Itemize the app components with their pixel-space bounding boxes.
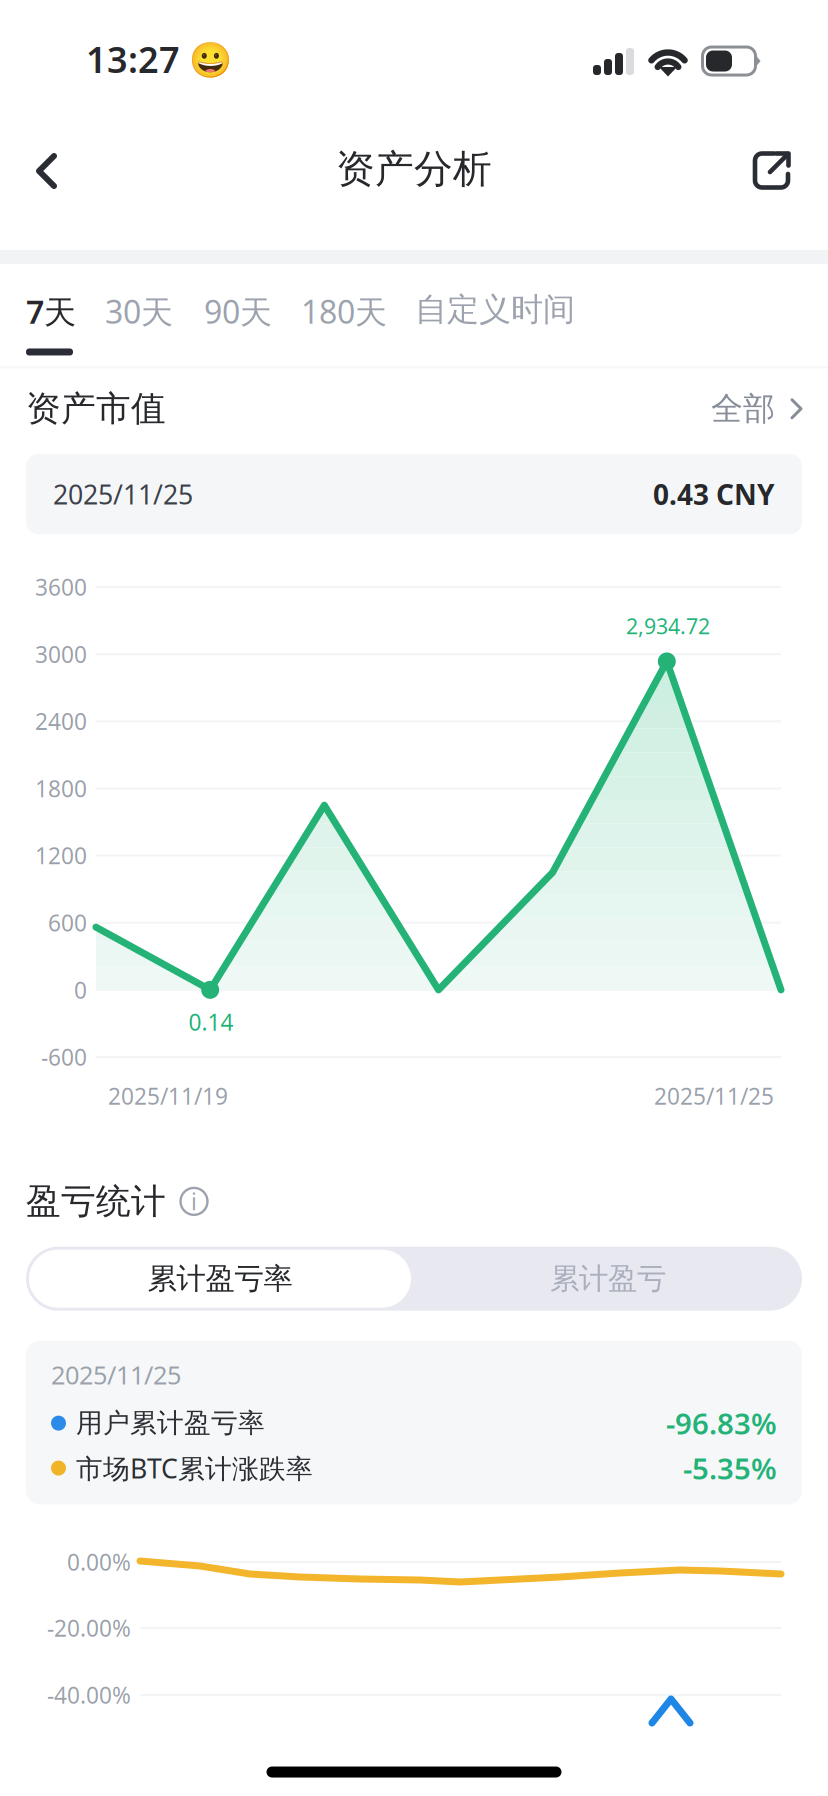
button[interactable]: 全部 bbox=[711, 389, 802, 428]
staticText: 资产市值 bbox=[26, 387, 166, 430]
staticText: 0 bbox=[74, 975, 87, 1005]
staticText: 累计盈亏 bbox=[550, 1261, 666, 1297]
staticText: 7天 bbox=[26, 290, 76, 332]
button[interactable]: 180天 bbox=[301, 290, 387, 332]
staticText: 2400 bbox=[35, 706, 87, 736]
staticText: 3600 bbox=[35, 572, 87, 602]
staticText: 累计盈亏率 bbox=[147, 1261, 292, 1297]
staticText: 0.14 bbox=[188, 1007, 233, 1037]
staticText: 1800 bbox=[35, 773, 87, 803]
staticText: i bbox=[191, 1186, 197, 1216]
button[interactable]: 90天 bbox=[204, 290, 272, 332]
staticText: 2025/11/19 bbox=[108, 1081, 228, 1111]
staticText: -96.83% bbox=[666, 1404, 777, 1443]
staticText: 13:27 bbox=[86, 35, 180, 83]
button[interactable]: 30天 bbox=[105, 290, 173, 332]
button[interactable]: 累计盈亏率 bbox=[26, 1247, 414, 1311]
button[interactable]: 分享 bbox=[721, 125, 825, 218]
staticText: 😀 bbox=[180, 36, 232, 82]
staticText: 用户累计盈亏率 bbox=[76, 1407, 265, 1440]
staticText: 盈亏统计 bbox=[26, 1180, 166, 1223]
button[interactable]: 自定义时间 bbox=[415, 290, 575, 329]
staticText: 0.00% bbox=[67, 1547, 131, 1577]
staticText: 全部 bbox=[711, 389, 775, 428]
staticText: 3000 bbox=[35, 639, 87, 669]
staticText: -40.00% bbox=[47, 1680, 131, 1710]
staticText: -20.00% bbox=[47, 1613, 131, 1643]
staticText: 2025/11/25 bbox=[51, 1358, 181, 1391]
button[interactable]: 说明 bbox=[179, 1186, 209, 1216]
staticText: 2025/11/25 bbox=[654, 1081, 774, 1111]
staticText: 市场BTC累计涨跌率 bbox=[76, 1450, 313, 1486]
staticText: 30天 bbox=[105, 290, 173, 332]
staticText: 180天 bbox=[301, 290, 387, 332]
staticText: 自定义时间 bbox=[415, 290, 575, 329]
staticText: 资产分析 bbox=[336, 145, 492, 193]
staticText: 90天 bbox=[204, 290, 272, 332]
staticText: 2,934.72 bbox=[626, 612, 710, 640]
staticText: 1200 bbox=[35, 840, 87, 871]
button[interactable]: 7天 bbox=[26, 290, 76, 355]
staticText: -600 bbox=[41, 1042, 87, 1072]
button[interactable]: 累计盈亏 bbox=[414, 1247, 802, 1311]
staticText: -5.35% bbox=[683, 1449, 777, 1488]
staticText: 2025/11/25 bbox=[53, 476, 193, 512]
staticText: 600 bbox=[48, 908, 87, 938]
button[interactable]: 返回 bbox=[1, 126, 92, 216]
staticText: 0.43 CNY bbox=[653, 475, 775, 513]
